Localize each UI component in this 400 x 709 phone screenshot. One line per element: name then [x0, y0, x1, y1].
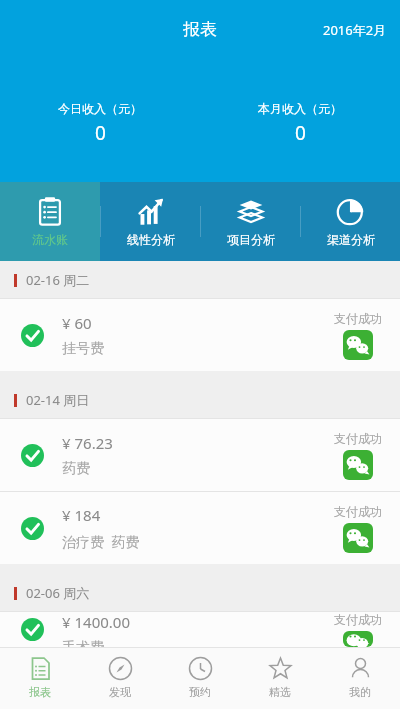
other: WeChat payment	[343, 631, 373, 647]
staticText: 报表	[29, 685, 51, 699]
staticText: 02-06 周六	[26, 584, 90, 602]
other: WeChat payment	[343, 450, 373, 480]
staticText: ¥ 76.23	[62, 433, 113, 453]
staticText: ¥ 1400.00	[62, 612, 130, 632]
staticText: 精选	[269, 685, 291, 699]
staticText: 2016年2月	[323, 21, 387, 39]
staticText: 本月收入（元）	[258, 101, 342, 116]
button[interactable]: 项目分析	[201, 182, 300, 261]
staticText: 我的	[349, 685, 371, 699]
staticText: ¥ 184	[62, 505, 101, 525]
staticText: 支付成功	[334, 431, 382, 446]
staticText: 今日收入（元）	[58, 101, 142, 116]
button[interactable]: 我的	[320, 647, 400, 709]
staticText: 支付成功	[334, 612, 382, 627]
button[interactable]: 流水账	[0, 182, 100, 261]
staticText: 挂号费	[62, 340, 104, 358]
staticText: 支付成功	[334, 504, 382, 519]
button[interactable]: 发现	[80, 647, 160, 709]
staticText: 02-14 周日	[26, 391, 90, 409]
staticText: 发现	[109, 685, 131, 699]
staticText: 流水账	[32, 232, 68, 247]
other: WeChat payment	[343, 523, 373, 553]
button[interactable]: 精选	[240, 647, 320, 709]
staticText: 药费	[62, 460, 90, 478]
button[interactable]: ¥ 1400.00	[0, 612, 400, 647]
staticText: 治疗费 药费	[62, 532, 140, 551]
staticText: 报表	[183, 19, 217, 40]
staticText: 线性分析	[127, 232, 175, 247]
button[interactable]: ¥ 184	[0, 492, 400, 564]
staticText: 0	[95, 120, 106, 146]
other: WeChat payment	[343, 330, 373, 360]
button[interactable]: ¥ 60	[0, 299, 400, 371]
button[interactable]: 报表	[0, 647, 80, 709]
button[interactable]: 预约	[160, 647, 240, 709]
staticText: 0	[295, 120, 306, 146]
staticText: 项目分析	[227, 232, 275, 247]
staticText: ¥ 60	[62, 313, 92, 333]
staticText: 渠道分析	[327, 232, 375, 247]
staticText: 02-16 周二	[26, 271, 90, 289]
staticText: 预约	[189, 685, 211, 699]
staticText: 手术费	[62, 639, 104, 647]
button[interactable]: 渠道分析	[301, 182, 400, 261]
button[interactable]: ¥ 76.23	[0, 419, 400, 491]
button[interactable]: 线性分析	[101, 182, 200, 261]
staticText: 支付成功	[334, 311, 382, 326]
